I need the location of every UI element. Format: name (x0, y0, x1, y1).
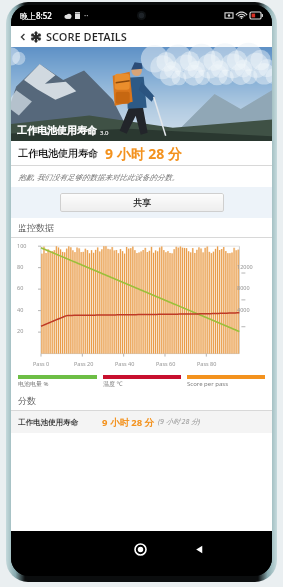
staticText: Pass 40 (115, 360, 135, 367)
staticText: 9 小时 28 分 (105, 144, 182, 163)
staticText: 80 (17, 263, 24, 270)
staticText: SCORE DETAILS (46, 29, 127, 44)
staticText: 40 (17, 306, 24, 313)
staticText: 分数 (18, 395, 36, 406)
staticText: 9 小时 28 分 (102, 416, 155, 429)
staticText: 12000 (237, 263, 253, 270)
staticText: 工作电池使用寿命 (18, 418, 78, 427)
staticText: 工作电池使用寿命 (17, 124, 97, 137)
button[interactable]: Back (188, 538, 210, 560)
staticText: Pass 80 (197, 360, 217, 367)
staticText: 抱歉, 我们没有足够的数据来对比此设备的分数。 (18, 172, 180, 182)
staticText: 共享 (133, 197, 151, 208)
staticText: 温度 ℃ (103, 380, 123, 388)
staticText: Score per pass (187, 380, 229, 388)
staticText: Pass 20 (74, 360, 94, 367)
button[interactable]: Home (129, 538, 151, 560)
staticText: 3.0 (100, 129, 109, 137)
staticText: 8000 (237, 284, 250, 291)
staticText: 60 (17, 284, 24, 291)
staticText: Pass 60 (156, 360, 176, 367)
staticText: 4000 (237, 306, 250, 313)
staticText: 晚上8:52 (20, 10, 52, 21)
staticText: Pass 0 (33, 360, 50, 367)
button[interactable]: 共享 (60, 193, 224, 212)
staticText: 监控数据 (18, 222, 54, 233)
button[interactable]: 工作电池使用寿命 (11, 411, 272, 433)
staticText: 20 (17, 327, 24, 334)
staticText: 100 (17, 242, 27, 249)
staticText: 工作电池使用寿命 (18, 147, 98, 160)
button[interactable]: Back (16, 30, 30, 44)
staticText: (9 小时 28 分) (158, 417, 201, 427)
staticText: ·· (84, 10, 89, 21)
staticText: 电池电量 % (18, 380, 49, 388)
